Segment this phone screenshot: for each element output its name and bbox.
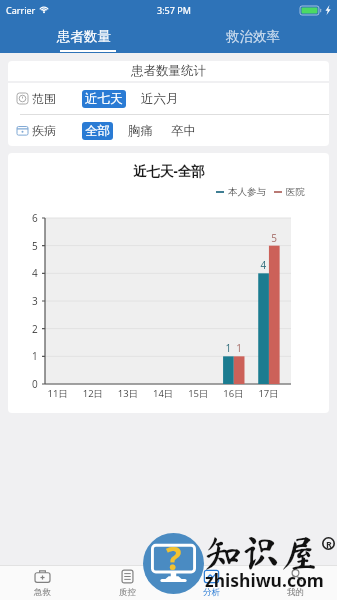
staticText: 疾病 bbox=[32, 123, 56, 138]
staticText: 3:57 PM bbox=[157, 4, 191, 16]
staticText: 质控 bbox=[119, 587, 136, 598]
button[interactable]: 质控 bbox=[85, 566, 169, 600]
button[interactable]: 卒中 bbox=[168, 122, 199, 140]
staticText: 我的 bbox=[287, 587, 304, 598]
staticText: 患者数量统计 bbox=[131, 63, 206, 79]
staticText: R bbox=[326, 538, 332, 550]
button[interactable]: 分析 bbox=[169, 566, 253, 600]
staticText: 卒中 bbox=[171, 123, 196, 139]
button[interactable]: 近六月 bbox=[138, 90, 182, 108]
staticText: 胸痛 bbox=[128, 123, 153, 139]
button[interactable]: 全部 bbox=[82, 122, 113, 140]
staticText: 近七天-全部 bbox=[133, 162, 205, 180]
staticText: 全部 bbox=[85, 123, 110, 139]
button[interactable]: 我的 bbox=[253, 566, 337, 600]
button[interactable]: 急救 bbox=[0, 566, 85, 600]
staticText: 分析 bbox=[203, 587, 220, 598]
staticText: 医院 bbox=[286, 186, 305, 198]
button[interactable]: 胸痛 bbox=[125, 122, 156, 140]
staticText: 救治效率 bbox=[226, 28, 280, 45]
staticText: 知识屋 bbox=[204, 534, 319, 572]
staticText: 范围 bbox=[32, 91, 56, 106]
staticText: ? bbox=[166, 536, 182, 580]
staticText: 本人参与 bbox=[228, 186, 266, 198]
staticText: 患者数量 bbox=[57, 28, 111, 45]
button[interactable]: 患者数量 bbox=[0, 20, 168, 53]
staticText: zhishiwu.com bbox=[205, 568, 324, 592]
staticText: 近七天 bbox=[85, 91, 123, 107]
staticText: 近六月 bbox=[141, 91, 179, 107]
staticText: Carrier bbox=[6, 4, 36, 16]
button[interactable]: 患者数量统计 bbox=[8, 61, 329, 81]
staticText: 急救 bbox=[34, 587, 51, 598]
button[interactable]: 近七天 bbox=[82, 90, 126, 108]
button[interactable]: 救治效率 bbox=[168, 20, 337, 53]
